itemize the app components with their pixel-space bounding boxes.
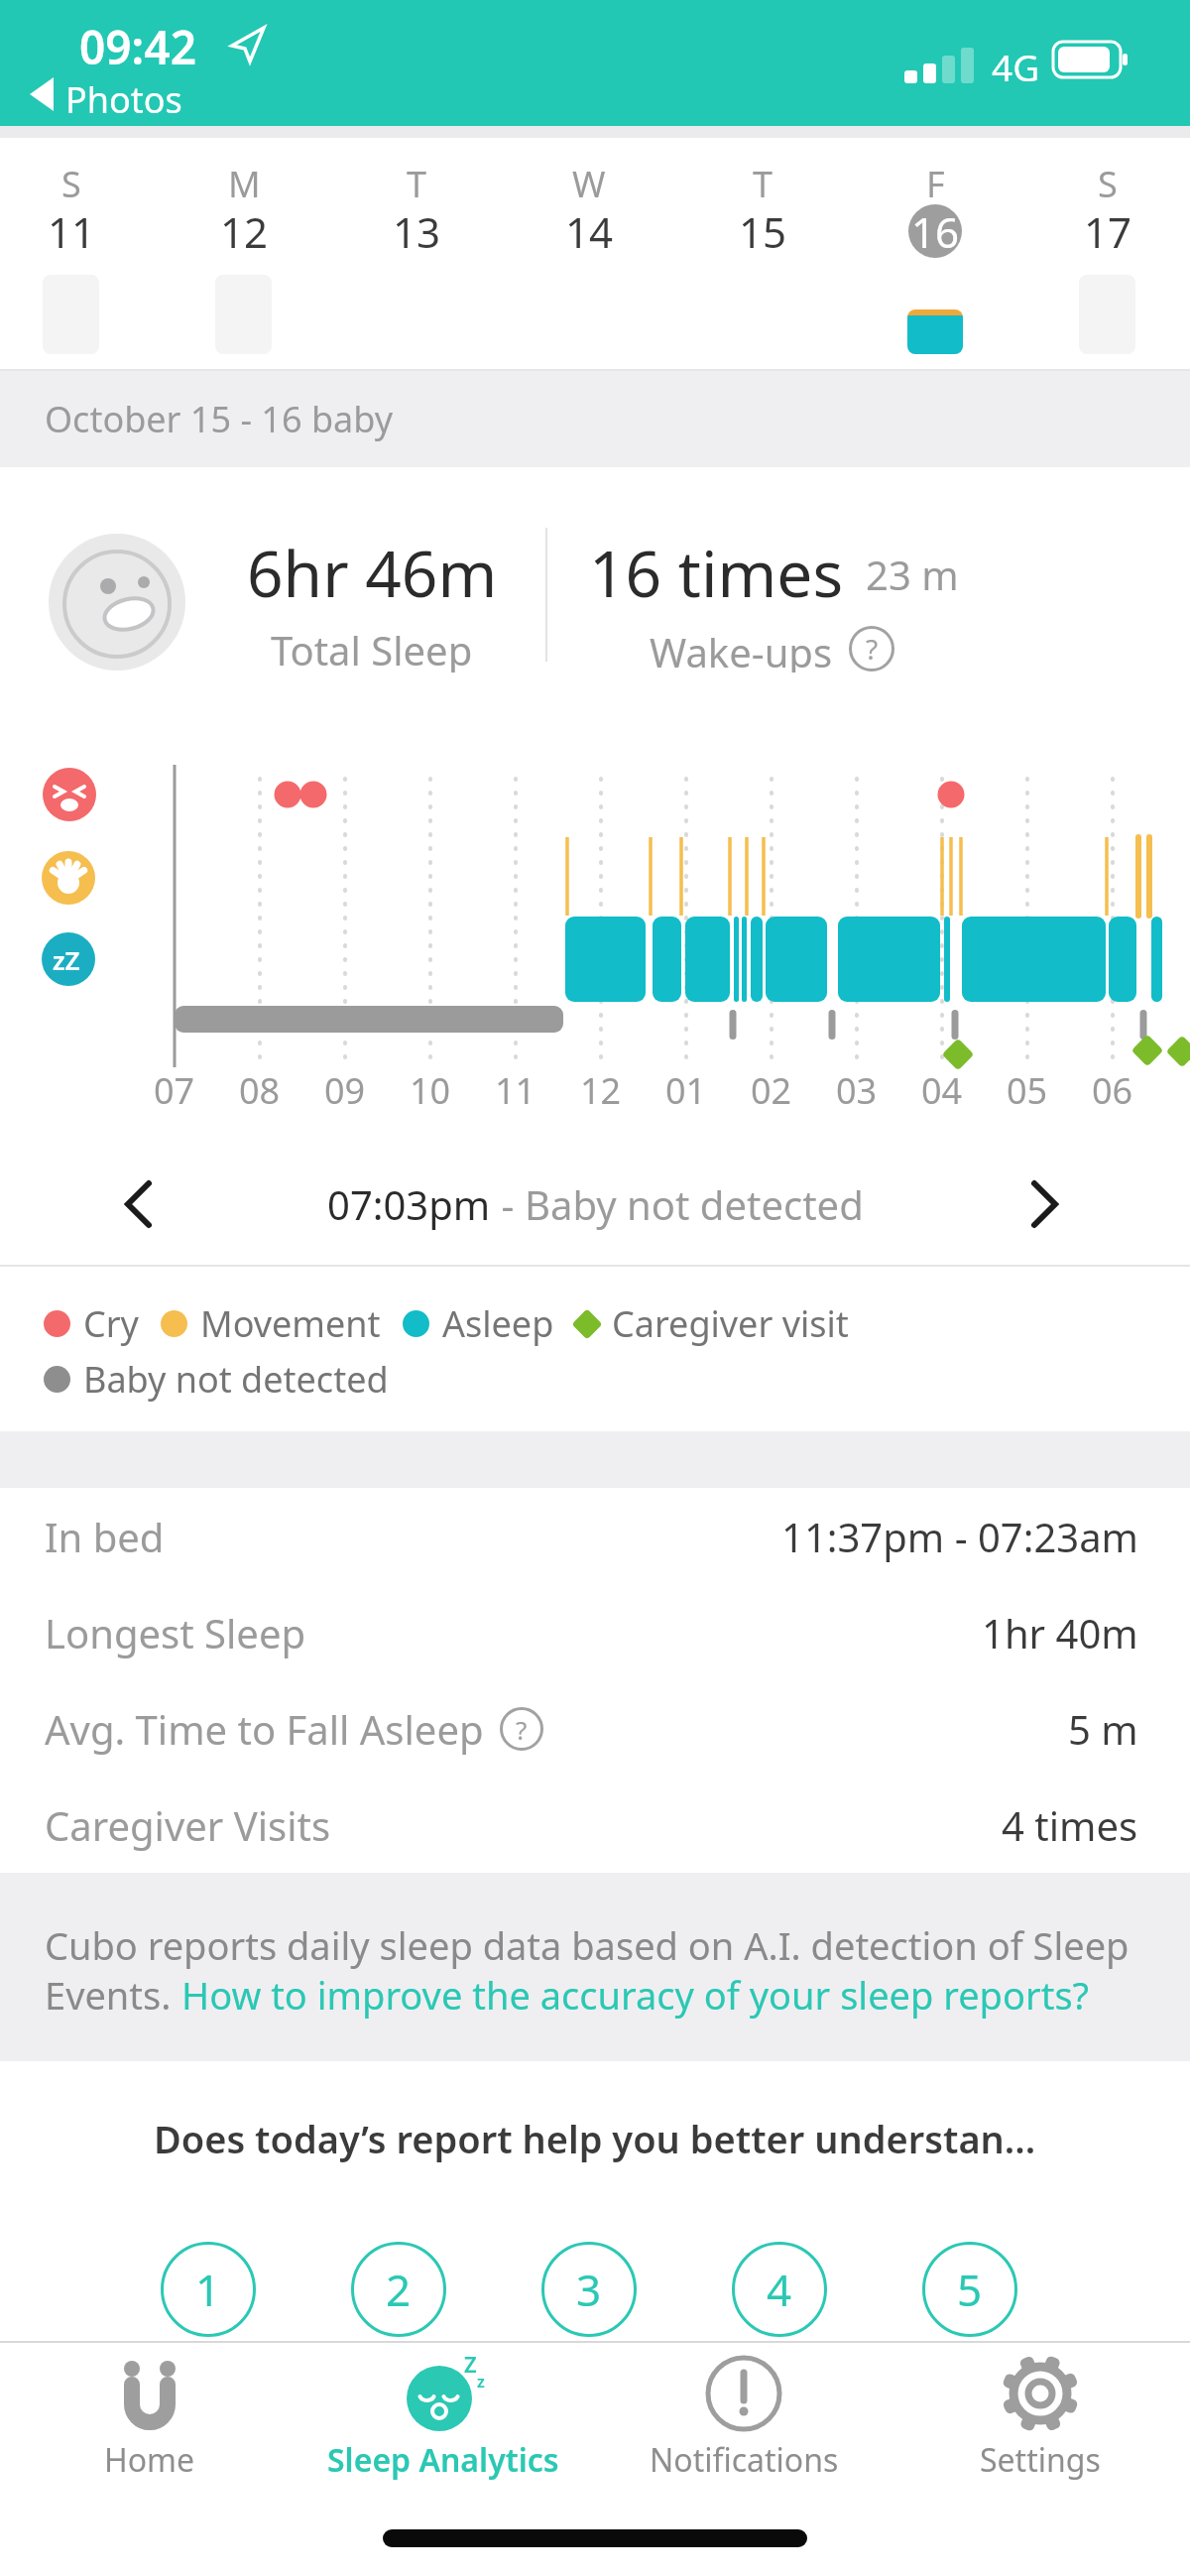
staticText: In bed bbox=[45, 1510, 165, 1563]
staticText: S bbox=[1098, 160, 1118, 203]
button[interactable]: S bbox=[1022, 138, 1190, 369]
staticText: 08 bbox=[239, 1066, 281, 1108]
staticText: 10 bbox=[410, 1066, 451, 1108]
staticText: Longest Sleep bbox=[45, 1606, 306, 1659]
staticText: Cubo reports daily sleep data based on A… bbox=[45, 1919, 1130, 1971]
staticText: 12 bbox=[220, 203, 269, 259]
staticText: Photos bbox=[65, 75, 182, 124]
staticText: 12 bbox=[580, 1066, 622, 1108]
staticText: October 15 - 16 baby bbox=[45, 395, 394, 443]
staticText: Notifications bbox=[650, 2438, 839, 2482]
staticText: 15 bbox=[739, 203, 787, 259]
button[interactable]: T bbox=[677, 138, 848, 369]
staticText: 2 bbox=[386, 2260, 412, 2319]
staticText: Sleep Analytics bbox=[327, 2438, 559, 2482]
button[interactable]: T bbox=[331, 138, 502, 369]
staticText: 14 bbox=[565, 203, 614, 259]
staticText: 09 bbox=[324, 1066, 366, 1108]
staticText: 09:42 bbox=[79, 16, 196, 78]
staticText: 6hr 46m bbox=[247, 530, 498, 607]
staticText: Total Sleep bbox=[271, 623, 473, 673]
staticText: 11 bbox=[48, 203, 96, 259]
staticText: Cry bbox=[83, 1299, 139, 1348]
button[interactable]: How to improve the accuracy of your slee… bbox=[181, 1969, 1090, 2021]
button[interactable]: Notifications bbox=[605, 2349, 883, 2488]
staticText: 11 bbox=[495, 1066, 536, 1108]
button[interactable]: Settings bbox=[901, 2349, 1179, 2488]
staticText: Does today’s report help you better unde… bbox=[154, 2113, 1036, 2164]
button[interactable]: M bbox=[159, 138, 329, 369]
staticText: Home bbox=[104, 2438, 195, 2482]
staticText: Events. bbox=[45, 1969, 181, 2021]
staticText: W bbox=[572, 160, 606, 203]
staticText: Baby not detected bbox=[525, 1177, 864, 1231]
staticText: 1 bbox=[195, 2260, 221, 2319]
button[interactable] bbox=[121, 1180, 157, 1228]
button[interactable]: 5 bbox=[922, 2242, 1017, 2337]
staticText: 01 bbox=[665, 1066, 707, 1108]
staticText: Asleep bbox=[442, 1299, 554, 1348]
staticText: F bbox=[926, 160, 945, 203]
staticText: Baby not detected bbox=[83, 1355, 389, 1404]
staticText: zZ bbox=[53, 942, 80, 977]
staticText: Settings bbox=[980, 2438, 1101, 2482]
staticText: 16 times bbox=[589, 530, 844, 607]
staticText: Wake-ups bbox=[650, 625, 833, 673]
staticText: T bbox=[753, 160, 773, 203]
button[interactable]: Home bbox=[11, 2349, 289, 2488]
staticText: z bbox=[477, 2371, 485, 2392]
staticText: 17 bbox=[1084, 203, 1132, 259]
staticText: T bbox=[407, 160, 427, 203]
button[interactable]: 2 bbox=[351, 2242, 446, 2337]
staticText: Movement bbox=[200, 1299, 381, 1348]
button[interactable]: 4 bbox=[732, 2242, 827, 2337]
button[interactable]: F bbox=[850, 138, 1020, 369]
staticText: 07 bbox=[154, 1066, 195, 1108]
staticText: Avg. Time to Fall Asleep bbox=[45, 1702, 484, 1756]
staticText: 5 m bbox=[1068, 1702, 1138, 1756]
staticText: - bbox=[491, 1177, 525, 1231]
staticText: ? bbox=[516, 1712, 528, 1747]
button[interactable]: W bbox=[504, 138, 674, 369]
staticText: 06 bbox=[1092, 1066, 1133, 1108]
staticText: 03 bbox=[836, 1066, 878, 1108]
staticText: 02 bbox=[751, 1066, 792, 1108]
staticText: Z bbox=[464, 2349, 477, 2379]
staticText: 4G bbox=[992, 42, 1040, 91]
button[interactable]: S bbox=[0, 138, 157, 369]
staticText: 04 bbox=[921, 1066, 963, 1108]
button[interactable]: Z bbox=[304, 2349, 582, 2488]
button[interactable] bbox=[1026, 1180, 1062, 1228]
staticText: Caregiver Visits bbox=[45, 1798, 331, 1852]
staticText: M bbox=[228, 160, 261, 203]
staticText: 1hr 40m bbox=[982, 1606, 1138, 1659]
button[interactable]: 3 bbox=[541, 2242, 637, 2337]
staticText: 16 bbox=[911, 203, 960, 259]
staticText: 11:37pm - 07:23am bbox=[781, 1510, 1138, 1563]
staticText: 5 bbox=[957, 2260, 983, 2319]
staticText: 4 times bbox=[1002, 1798, 1138, 1852]
staticText: 05 bbox=[1007, 1066, 1048, 1108]
staticText: 4 bbox=[767, 2260, 792, 2319]
button[interactable]: 1 bbox=[161, 2242, 256, 2337]
staticText: S bbox=[61, 160, 81, 203]
staticText: 3 bbox=[576, 2260, 602, 2319]
staticText: 23 m bbox=[866, 548, 959, 601]
staticText: 13 bbox=[393, 203, 441, 259]
staticText: ? bbox=[866, 630, 879, 668]
staticText: Caregiver visit bbox=[612, 1299, 849, 1348]
staticText: 07:03pm bbox=[327, 1177, 491, 1231]
